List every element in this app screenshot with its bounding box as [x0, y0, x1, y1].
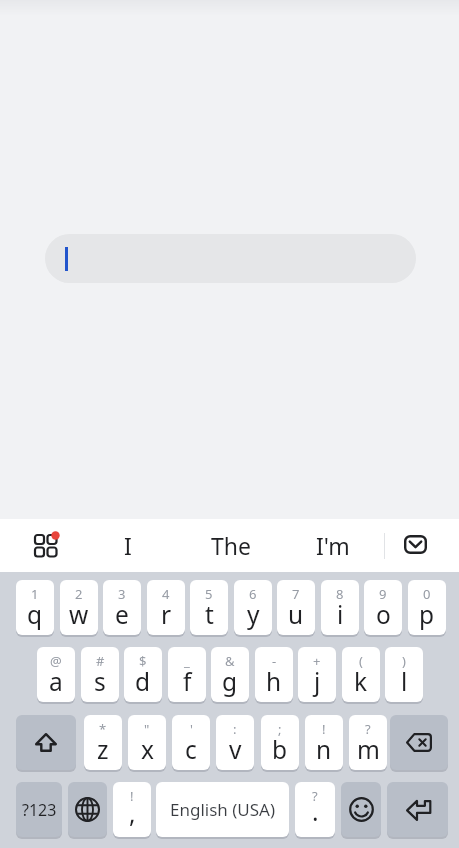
- button[interactable]: @: [37, 647, 75, 702]
- button[interactable]: I: [124, 530, 132, 561]
- staticText: l: [401, 665, 408, 698]
- button[interactable]: +: [298, 647, 336, 702]
- staticText: 2: [75, 585, 83, 603]
- staticText: ): [402, 652, 406, 670]
- button[interactable]: [16, 715, 76, 770]
- staticText: z: [97, 733, 109, 766]
- button[interactable]: 1: [16, 580, 54, 635]
- staticText: &: [225, 652, 235, 670]
- staticText: 7: [292, 585, 300, 603]
- button[interactable]: 8: [321, 580, 359, 635]
- staticText: ;: [278, 720, 282, 738]
- staticText: u: [288, 598, 304, 631]
- staticText: .: [312, 795, 319, 828]
- staticText: e: [115, 598, 129, 631]
- staticText: 4: [162, 585, 170, 603]
- button[interactable]: I'm: [316, 530, 350, 561]
- staticText: k: [354, 665, 368, 698]
- staticText: @: [50, 652, 62, 670]
- button[interactable]: ?: [349, 715, 387, 770]
- staticText: y: [247, 598, 260, 631]
- button[interactable]: 4: [147, 580, 185, 635]
- staticText: ': [190, 720, 193, 738]
- staticText: 1: [31, 585, 39, 603]
- button[interactable]: [26, 524, 68, 566]
- staticText: q: [27, 598, 43, 631]
- staticText: $: [139, 652, 147, 670]
- staticText: t: [205, 598, 214, 631]
- staticText: ": [144, 720, 150, 738]
- staticText: x: [141, 733, 154, 766]
- staticText: p: [419, 598, 435, 631]
- staticText: s: [94, 665, 106, 698]
- staticText: f: [183, 665, 192, 698]
- button[interactable]: 2: [60, 580, 98, 635]
- button[interactable]: [387, 782, 448, 837]
- staticText: m: [357, 733, 380, 766]
- button[interactable]: *: [84, 715, 122, 770]
- button[interactable]: [390, 715, 448, 770]
- button[interactable]: [68, 782, 107, 837]
- staticText: English (USA): [170, 798, 276, 821]
- staticText: g: [222, 665, 238, 698]
- button[interactable]: ': [172, 715, 210, 770]
- staticText: 8: [336, 585, 344, 603]
- staticText: n: [316, 733, 332, 766]
- staticText: ?: [365, 720, 371, 738]
- button[interactable]: !: [113, 782, 151, 837]
- button[interactable]: 6: [234, 580, 272, 635]
- staticText: (: [359, 652, 363, 670]
- staticText: 5: [205, 585, 213, 603]
- button[interactable]: $: [124, 647, 162, 702]
- staticText: *: [99, 720, 107, 738]
- button[interactable]: English (USA): [156, 782, 289, 837]
- button[interactable]: ?123: [16, 782, 62, 837]
- staticText: 3: [118, 585, 126, 603]
- staticText: 0: [423, 585, 431, 603]
- button[interactable]: 0: [408, 580, 446, 635]
- button[interactable]: The: [211, 530, 251, 561]
- staticText: !: [322, 720, 326, 738]
- button[interactable]: ": [128, 715, 166, 770]
- button[interactable]: #: [81, 647, 119, 702]
- button[interactable]: [341, 782, 381, 837]
- staticText: _: [184, 652, 190, 670]
- button[interactable]: ): [385, 647, 423, 702]
- staticText: b: [272, 733, 288, 766]
- staticText: d: [135, 665, 151, 698]
- staticText: r: [161, 598, 172, 631]
- staticText: h: [266, 665, 282, 698]
- button[interactable]: ?: [295, 782, 335, 837]
- staticText: :: [233, 720, 237, 738]
- staticText: j: [314, 665, 321, 698]
- staticText: ?: [312, 787, 318, 805]
- button[interactable]: [45, 234, 416, 283]
- button[interactable]: [396, 527, 436, 565]
- button[interactable]: !: [305, 715, 343, 770]
- staticText: +: [313, 652, 321, 670]
- staticText: c: [185, 733, 197, 766]
- button[interactable]: 7: [277, 580, 315, 635]
- staticText: i: [337, 598, 344, 631]
- button[interactable]: 3: [103, 580, 141, 635]
- button[interactable]: (: [342, 647, 380, 702]
- staticText: a: [49, 665, 63, 698]
- staticText: 9: [379, 585, 387, 603]
- staticText: ?123: [22, 799, 57, 821]
- staticText: 6: [249, 585, 257, 603]
- staticText: #: [96, 652, 105, 670]
- button[interactable]: ;: [261, 715, 299, 770]
- staticText: !: [130, 787, 134, 805]
- button[interactable]: -: [255, 647, 293, 702]
- button[interactable]: _: [168, 647, 206, 702]
- button[interactable]: &: [211, 647, 249, 702]
- button[interactable]: 5: [190, 580, 228, 635]
- staticText: v: [229, 733, 242, 766]
- staticText: -: [272, 652, 277, 670]
- staticText: o: [376, 598, 391, 631]
- button[interactable]: :: [216, 715, 254, 770]
- staticText: ,: [129, 797, 136, 830]
- button[interactable]: 9: [364, 580, 402, 635]
- staticText: w: [69, 598, 89, 631]
